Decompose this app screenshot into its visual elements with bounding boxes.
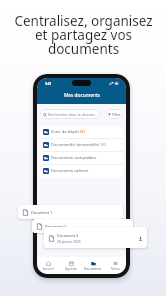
staticText: 9:41: [45, 82, 52, 86]
staticText: Documents: [84, 267, 102, 271]
staticText: Rechercher dans le dossier...: [48, 112, 97, 117]
staticText: (3): [101, 142, 106, 148]
other: Télécharger: [138, 236, 143, 241]
staticText: Document(s) demandé(s): [51, 142, 100, 148]
staticText: Zone de dépôt: [51, 129, 79, 135]
staticText: (4): [80, 129, 85, 135]
button[interactable]: Document 3: [44, 227, 147, 248]
staticText: Menu: [111, 267, 120, 271]
button[interactable]: Rechercher dans le dossier...: [40, 109, 100, 119]
button[interactable]: Documents comptables: [40, 152, 123, 164]
staticText: Mes documents: [64, 92, 100, 99]
button[interactable]: Document 2: [32, 219, 133, 233]
button[interactable]: Documents cabinet: [40, 165, 123, 177]
staticText: Documents cabinet: [51, 168, 89, 174]
staticText: Document 1: [31, 210, 53, 215]
staticText: Document 3: [57, 233, 79, 238]
staticText: Document 2: [45, 224, 67, 229]
staticText: Accueil: [43, 267, 54, 271]
button[interactable]: Document(s) demandé(s): [40, 139, 123, 151]
button[interactable]: Menu: [104, 261, 126, 274]
button[interactable]: Filtre: [106, 109, 123, 119]
button[interactable]: Zone de dépôt: [40, 126, 123, 138]
button[interactable]: Agenda: [60, 261, 82, 274]
button[interactable]: Accueil: [37, 261, 60, 274]
staticText: Documents comptables: [51, 155, 97, 161]
button[interactable]: Document 1: [18, 205, 123, 219]
button[interactable]: Documents: [82, 261, 104, 274]
staticText: Filtre: [112, 112, 121, 117]
staticText: Centralisez, organisez et partagez vos d…: [14, 12, 153, 58]
staticText: 28 janvier 2026: [57, 239, 81, 243]
staticText: Agenda: [65, 267, 77, 271]
